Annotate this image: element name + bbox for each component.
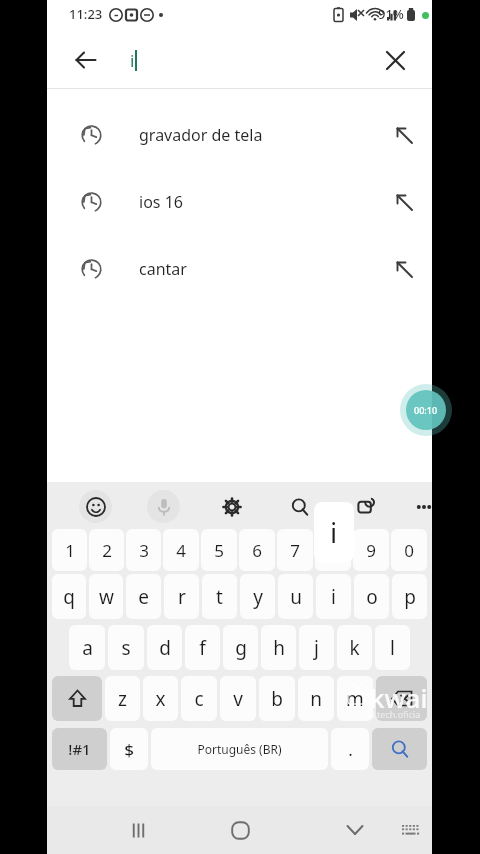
staticText: l	[390, 635, 395, 661]
staticText: u	[290, 584, 302, 610]
button[interactable]: 3	[126, 529, 161, 571]
staticText: f	[199, 635, 206, 661]
button[interactable]: Recents	[115, 807, 161, 853]
staticText: b	[271, 686, 283, 712]
staticText: q	[63, 584, 75, 610]
button[interactable]: j	[299, 625, 334, 670]
staticText: 91%	[378, 5, 404, 23]
staticText: 9	[366, 539, 376, 562]
staticText: kwai	[370, 680, 428, 715]
staticText: i	[330, 513, 338, 551]
button[interactable]: Search	[372, 728, 427, 770]
staticText: m	[346, 686, 364, 712]
button[interactable]: l	[375, 625, 410, 670]
button[interactable]: Home	[217, 807, 263, 853]
button[interactable]: gravador de tela	[47, 101, 432, 168]
button[interactable]: 6	[239, 529, 275, 571]
button[interactable]: Voice input	[147, 490, 180, 523]
button[interactable]: 1	[52, 529, 87, 571]
button[interactable]: g	[223, 625, 258, 670]
button[interactable]: Switch keyboard	[390, 810, 430, 850]
button[interactable]: t	[202, 574, 237, 619]
button[interactable]: .	[331, 728, 369, 770]
staticText: !#1	[68, 739, 91, 759]
staticText: s	[121, 635, 131, 661]
staticText: v	[233, 686, 243, 712]
staticText: c	[194, 686, 204, 712]
staticText: h	[273, 635, 285, 661]
staticText: x	[155, 686, 166, 712]
button[interactable]: More options	[407, 490, 440, 523]
staticText: 7	[290, 539, 300, 562]
button[interactable]: a	[69, 625, 105, 670]
button[interactable]: $	[110, 728, 148, 770]
button[interactable]: b	[259, 676, 295, 721]
button[interactable]: 9	[353, 529, 389, 571]
button[interactable]: cantar	[47, 235, 432, 302]
button[interactable]: c	[181, 676, 217, 721]
button[interactable]: Português (BR)	[151, 728, 328, 770]
button[interactable]: Search	[283, 490, 316, 523]
staticText: 00:10	[414, 404, 438, 416]
button[interactable]: i	[316, 574, 351, 619]
staticText: y	[253, 584, 263, 610]
button[interactable]: 7	[277, 529, 313, 571]
button[interactable]: Insert cantar	[384, 249, 424, 289]
button[interactable]: f	[185, 625, 220, 670]
button[interactable]: q	[52, 574, 86, 619]
button[interactable]: p	[392, 574, 427, 619]
staticText: 11:23	[69, 5, 103, 23]
button[interactable]: w	[89, 574, 123, 619]
staticText: i	[331, 584, 336, 610]
button[interactable]: 2	[89, 529, 124, 571]
staticText: 1	[65, 539, 75, 562]
button[interactable]: Settings	[215, 490, 248, 523]
button[interactable]: e	[126, 574, 161, 619]
staticText: p	[404, 584, 416, 610]
button[interactable]: m	[337, 676, 373, 721]
button[interactable]: Shift	[52, 676, 102, 721]
staticText: cantar	[139, 258, 384, 280]
staticText: o	[366, 584, 378, 610]
staticText: d	[159, 635, 171, 661]
button[interactable]: n	[298, 676, 334, 721]
button[interactable]: r	[164, 574, 199, 619]
staticText: 0	[404, 539, 414, 562]
staticText: j	[314, 635, 319, 661]
button[interactable]: Insert gravador de tela	[384, 115, 424, 155]
staticText: n	[310, 686, 322, 712]
button[interactable]: o	[354, 574, 389, 619]
button[interactable]: Hide keyboard	[332, 807, 378, 853]
button[interactable]: Emoji	[79, 490, 112, 523]
button[interactable]: s	[108, 625, 144, 670]
staticText: 2	[102, 539, 112, 562]
button[interactable]: v	[220, 676, 256, 721]
staticText: .	[348, 738, 353, 761]
button[interactable]: 4	[163, 529, 199, 571]
staticText: i	[130, 49, 135, 72]
staticText: @obad.tech.oficia	[345, 708, 421, 720]
staticText: w	[99, 584, 114, 610]
button[interactable]: z	[105, 676, 140, 721]
staticText: g	[235, 635, 247, 661]
button[interactable]: !#1	[52, 728, 107, 770]
button[interactable]: y	[240, 574, 275, 619]
staticText: Português (BR)	[197, 741, 282, 757]
button[interactable]: Delete	[376, 676, 427, 721]
button[interactable]: d	[147, 625, 182, 670]
staticText: 3	[139, 539, 149, 562]
button[interactable]: ios 16	[47, 168, 432, 235]
button[interactable]: Insert ios 16	[384, 182, 424, 222]
button[interactable]: Clear	[374, 39, 416, 81]
staticText: $	[124, 738, 134, 761]
button[interactable]: k	[337, 625, 372, 670]
button[interactable]: 8	[315, 529, 351, 571]
button[interactable]: h	[261, 625, 296, 670]
button[interactable]: x	[143, 676, 178, 721]
button[interactable]: Back	[65, 39, 107, 81]
button[interactable]: 0	[391, 529, 427, 571]
button[interactable]: u	[278, 574, 313, 619]
staticText: a	[82, 635, 93, 661]
button[interactable]: Translate	[349, 490, 382, 523]
button[interactable]: 5	[201, 529, 237, 571]
